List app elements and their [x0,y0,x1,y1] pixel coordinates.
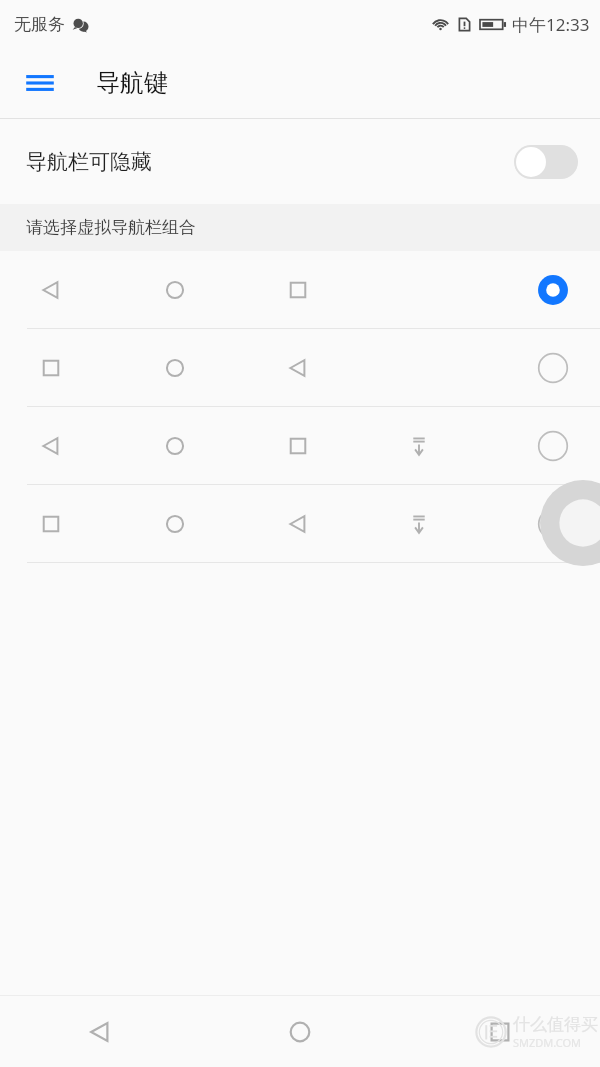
button[interactable]: Recent apps [400,996,600,1067]
staticText: 导航键 [96,68,168,98]
button[interactable]: Floating assistant [540,480,600,566]
staticText: 什么值得买 [513,1014,598,1035]
button[interactable]: Home [200,996,400,1067]
button[interactable] [0,407,600,485]
button[interactable]: Back [0,996,200,1067]
button[interactable]: 导航栏可隐藏 [0,119,600,204]
staticText: 中午12:33 [512,13,590,36]
staticText: 无服务 [14,14,65,35]
staticText: SMZDM.COM [513,1035,582,1050]
button[interactable]: Menu [16,59,64,107]
button[interactable] [0,251,600,329]
staticText: 请选择虚拟导航栏组合 [26,217,196,238]
button[interactable] [0,329,600,407]
staticText: 导航栏可隐藏 [26,149,152,175]
button[interactable] [0,485,600,563]
